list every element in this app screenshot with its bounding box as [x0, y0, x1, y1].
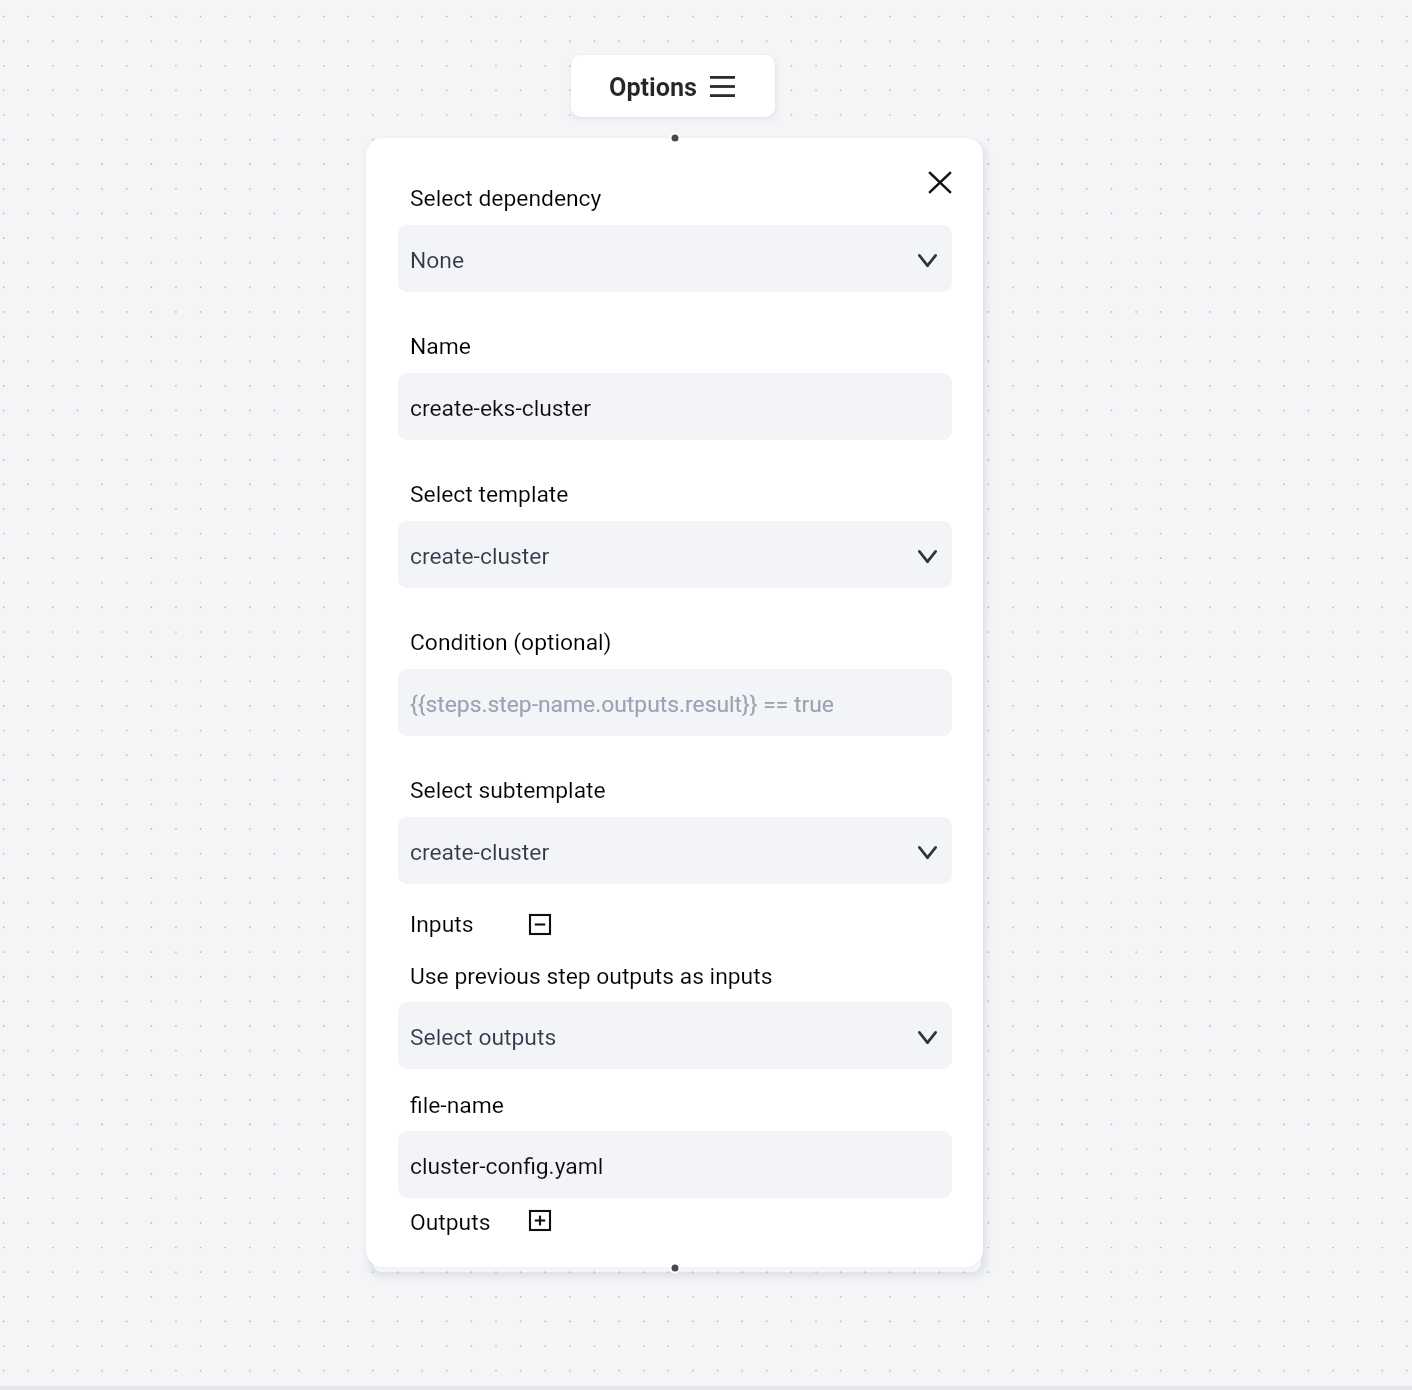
button[interactable]	[398, 373, 952, 440]
staticText: Select dependency	[410, 185, 602, 212]
staticText: create-eks-cluster	[410, 395, 591, 422]
button[interactable]	[398, 521, 952, 588]
staticText: Select template	[410, 481, 569, 508]
staticText: file-name	[410, 1092, 504, 1119]
staticText: Condition (optional)	[410, 629, 612, 656]
staticText: {{steps.step-name.outputs.result}} == tr…	[410, 691, 834, 718]
staticText: Options	[609, 73, 698, 103]
button[interactable]	[398, 1131, 952, 1198]
staticText: Select subtemplate	[410, 777, 606, 804]
button[interactable]	[398, 669, 952, 736]
staticText: None	[410, 247, 465, 274]
other: Open dropdown	[918, 254, 937, 267]
staticText: cluster-config.yaml	[410, 1153, 604, 1180]
other: Open dropdown	[918, 1031, 937, 1044]
button[interactable]: Close	[918, 160, 962, 204]
button[interactable]	[398, 1002, 952, 1069]
staticText: create-cluster	[410, 543, 550, 570]
button[interactable]: Menu	[700, 66, 745, 107]
staticText: Select outputs	[410, 1024, 557, 1051]
button[interactable]	[571, 55, 775, 117]
other: Open dropdown	[918, 846, 937, 859]
staticText: Inputs	[410, 911, 474, 938]
other: Open dropdown	[918, 550, 937, 563]
button[interactable]: Expand outputs	[524, 1205, 556, 1236]
button[interactable]: Collapse inputs	[524, 909, 556, 940]
staticText: Name	[410, 333, 471, 360]
staticText: create-cluster	[410, 839, 550, 866]
staticText: Outputs	[410, 1209, 491, 1236]
button[interactable]	[398, 817, 952, 884]
staticText: Use previous step outputs as inputs	[410, 963, 773, 990]
button[interactable]	[398, 225, 952, 292]
